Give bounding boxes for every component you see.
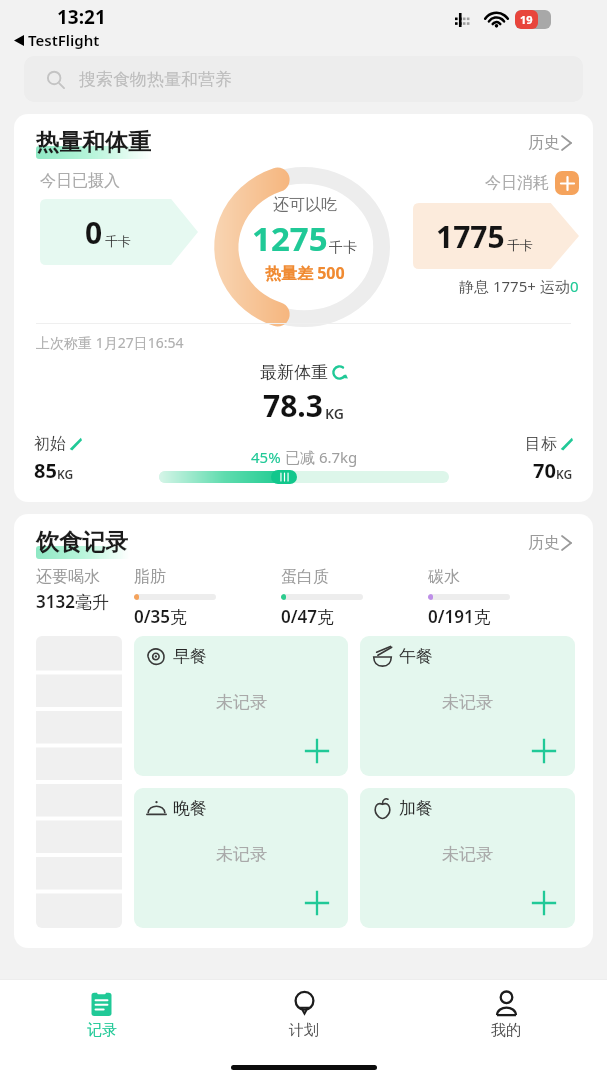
button[interactable]: 搜索食物热量和营养 (24, 56, 583, 102)
button[interactable]: 最新体重 (14, 362, 593, 383)
staticText: 千卡 (329, 239, 357, 257)
staticText: 还要喝水 (36, 567, 100, 587)
button[interactable]: 脂肪 (134, 567, 281, 628)
staticText: 饮食记录 (36, 528, 128, 557)
staticText: 午餐 (399, 646, 433, 667)
staticText: 历史 (528, 533, 560, 553)
staticText: 最新体重 (260, 362, 328, 383)
staticText: 78.3 (263, 385, 323, 426)
staticText: KG (325, 404, 344, 423)
staticText: 1775 (436, 216, 505, 257)
button[interactable]: 记录 (0, 980, 203, 1040)
button[interactable]: Add exercise (555, 171, 579, 195)
staticText: 上次称重 1月27日16:54 (36, 333, 184, 352)
staticText: 今日消耗 (485, 173, 549, 193)
staticText: 0 (85, 212, 103, 253)
staticText: 0 (570, 276, 579, 296)
staticText: 0/35克 (134, 605, 187, 628)
staticText: 目标 (525, 434, 557, 454)
staticText: 千卡 (105, 233, 131, 249)
button[interactable]: Add 晚餐 (302, 888, 332, 918)
staticText: 0/47克 (281, 605, 334, 628)
button[interactable]: 历史 (524, 129, 575, 157)
staticText: 早餐 (173, 646, 207, 667)
staticText: 还可以吃 (273, 195, 337, 215)
staticText: 蛋白质 (281, 567, 329, 587)
staticText: 搜索食物热量和营养 (79, 69, 232, 90)
button[interactable]: Add 早餐 (302, 736, 332, 766)
staticText: 已减 6.7kg (285, 447, 358, 467)
staticText: 静息 1775+ 运动 (459, 276, 570, 296)
staticText: 1275 (252, 216, 328, 261)
staticText: 热量差 500 (265, 262, 345, 284)
staticText: 千卡 (507, 237, 533, 253)
staticText: 我的 (491, 1021, 521, 1040)
staticText: 热量和体重 (36, 128, 151, 157)
button[interactable]: 我的 (405, 980, 607, 1040)
button[interactable]: 目标 (525, 434, 573, 454)
button[interactable]: Water intake (36, 636, 122, 928)
button[interactable]: Add 加餐 (529, 888, 559, 918)
button[interactable]: 初始 (34, 434, 82, 454)
staticText: 未记录 (442, 844, 493, 865)
staticText: 45% (251, 447, 281, 467)
staticText: 未记录 (216, 692, 267, 713)
staticText: TestFlight (28, 30, 100, 50)
staticText: 脂肪 (134, 567, 166, 587)
staticText: 初始 (34, 434, 66, 454)
staticText: 未记录 (216, 844, 267, 865)
staticText: 19 (520, 12, 533, 27)
button[interactable]: 碳水 (428, 567, 575, 628)
staticText: 3132毫升 (36, 590, 109, 613)
button[interactable]: 历史 (524, 529, 575, 557)
button[interactable]: 加餐 (360, 788, 575, 928)
button[interactable]: 0 (40, 199, 198, 265)
staticText: 碳水 (428, 567, 460, 587)
staticText: 85 (34, 457, 57, 484)
button[interactable]: 晚餐 (134, 788, 348, 928)
staticText: 未记录 (442, 692, 493, 713)
staticText: 晚餐 (173, 798, 207, 819)
button[interactable]: Add 午餐 (529, 736, 559, 766)
staticText: 加餐 (399, 798, 433, 819)
staticText: 历史 (528, 133, 560, 153)
button[interactable]: 计划 (203, 980, 405, 1040)
staticText: 0/191克 (428, 605, 491, 628)
staticText: 13:21 (57, 4, 106, 30)
button[interactable]: 早餐 (134, 636, 348, 776)
staticText: 70 (533, 457, 556, 484)
button[interactable]: 还可以吃 (218, 167, 390, 327)
button[interactable]: 午餐 (360, 636, 575, 776)
button[interactable] (271, 470, 297, 484)
staticText: KG (556, 466, 573, 482)
staticText: 计划 (289, 1021, 319, 1040)
button[interactable]: 1775 (413, 203, 579, 269)
staticText: 今日已摄入 (40, 171, 120, 191)
staticText: KG (57, 466, 74, 482)
staticText: 记录 (87, 1021, 117, 1040)
button[interactable]: 蛋白质 (281, 567, 428, 628)
